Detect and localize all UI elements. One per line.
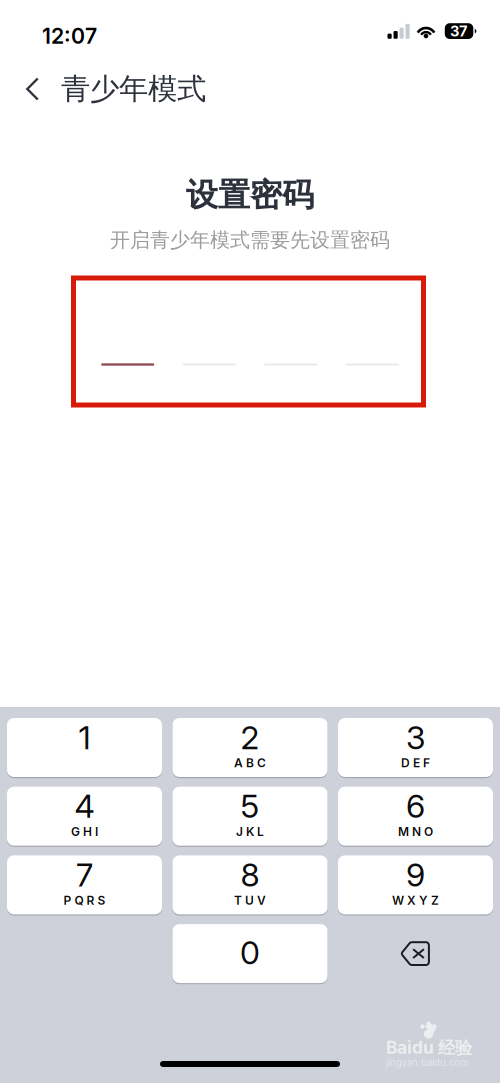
staticText: 青少年模式 (61, 70, 206, 107)
button[interactable]: 9 (338, 855, 493, 914)
staticText: P Q R S (63, 893, 105, 908)
staticText: 0 (240, 933, 260, 972)
button[interactable]: Delete (338, 924, 493, 983)
staticText: A B C (234, 756, 266, 770)
staticText: 2 (240, 718, 259, 757)
button[interactable]: 0 (172, 924, 327, 983)
staticText: 设置密码 (186, 175, 314, 215)
staticText: T U V (234, 893, 266, 908)
staticText: J K L (236, 824, 264, 839)
staticText: 12:07 (42, 23, 97, 49)
staticText: D E F (401, 756, 430, 770)
staticText: 9 (406, 855, 425, 894)
button[interactable]: 2 (172, 718, 327, 777)
staticText: jingyan.baidu.com (386, 1057, 468, 1068)
staticText: 4 (74, 787, 94, 825)
button[interactable]: 1 (7, 718, 162, 777)
staticText: 7 (76, 855, 93, 894)
staticText: 1 (78, 718, 90, 757)
staticText: W X Y Z (392, 893, 439, 908)
button[interactable]: 7 (7, 855, 162, 914)
button[interactable]: Back (14, 63, 61, 115)
button[interactable]: 5 (172, 787, 327, 846)
staticText: G H I (71, 824, 98, 839)
button[interactable]: 6 (338, 787, 493, 846)
button[interactable]: 3 (338, 718, 493, 777)
staticText: 开启青少年模式需要先设置密码 (110, 227, 390, 253)
button[interactable]: 8 (172, 855, 327, 914)
staticText: Baidu 经验 (386, 1037, 472, 1059)
staticText: 37 (450, 22, 468, 40)
button[interactable]: 4 (7, 787, 162, 846)
staticText: 3 (406, 718, 425, 757)
staticText: 6 (406, 787, 425, 825)
staticText: M N O (398, 824, 433, 839)
staticText: 8 (240, 855, 259, 894)
staticText: 5 (240, 787, 259, 825)
